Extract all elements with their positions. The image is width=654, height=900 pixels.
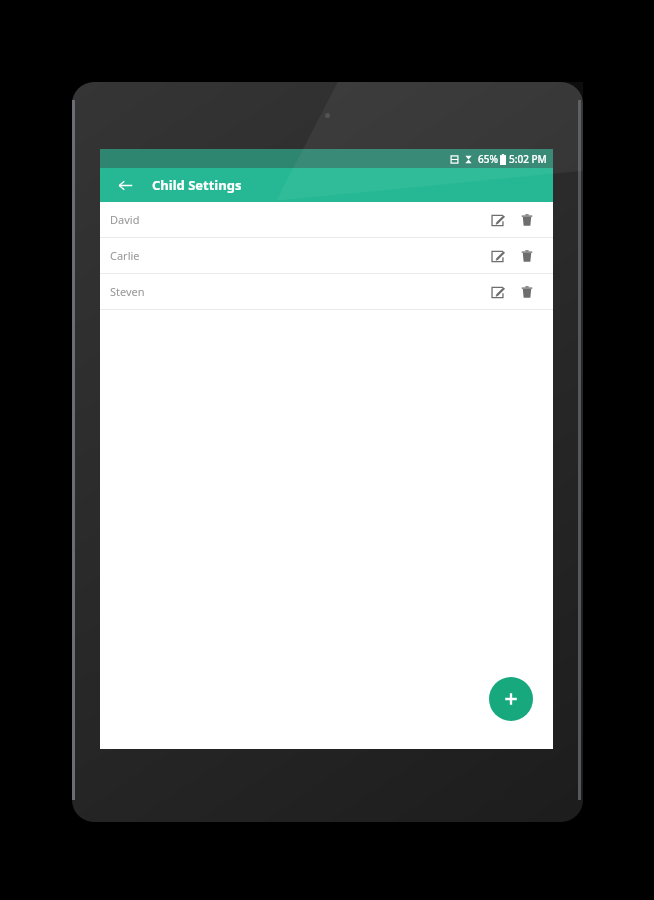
staticText: Child Settings xyxy=(152,176,242,194)
button[interactable]: Delete Carlie xyxy=(515,244,539,268)
staticText: 5:02 PM xyxy=(509,152,547,166)
button[interactable]: Carlie xyxy=(100,238,553,273)
button[interactable]: Edit Steven xyxy=(485,280,509,304)
staticText: Steven xyxy=(110,284,145,299)
button[interactable]: David xyxy=(100,202,553,237)
button[interactable]: Edit David xyxy=(485,208,509,232)
button[interactable]: Back xyxy=(112,172,138,198)
button[interactable]: Delete Steven xyxy=(515,280,539,304)
staticText: David xyxy=(110,212,140,227)
button[interactable]: Edit Carlie xyxy=(485,244,509,268)
button[interactable]: Add child xyxy=(489,677,533,721)
staticText: Carlie xyxy=(110,248,140,263)
staticText: 65% xyxy=(478,152,498,166)
button[interactable]: Steven xyxy=(100,274,553,309)
button[interactable]: Delete David xyxy=(515,208,539,232)
